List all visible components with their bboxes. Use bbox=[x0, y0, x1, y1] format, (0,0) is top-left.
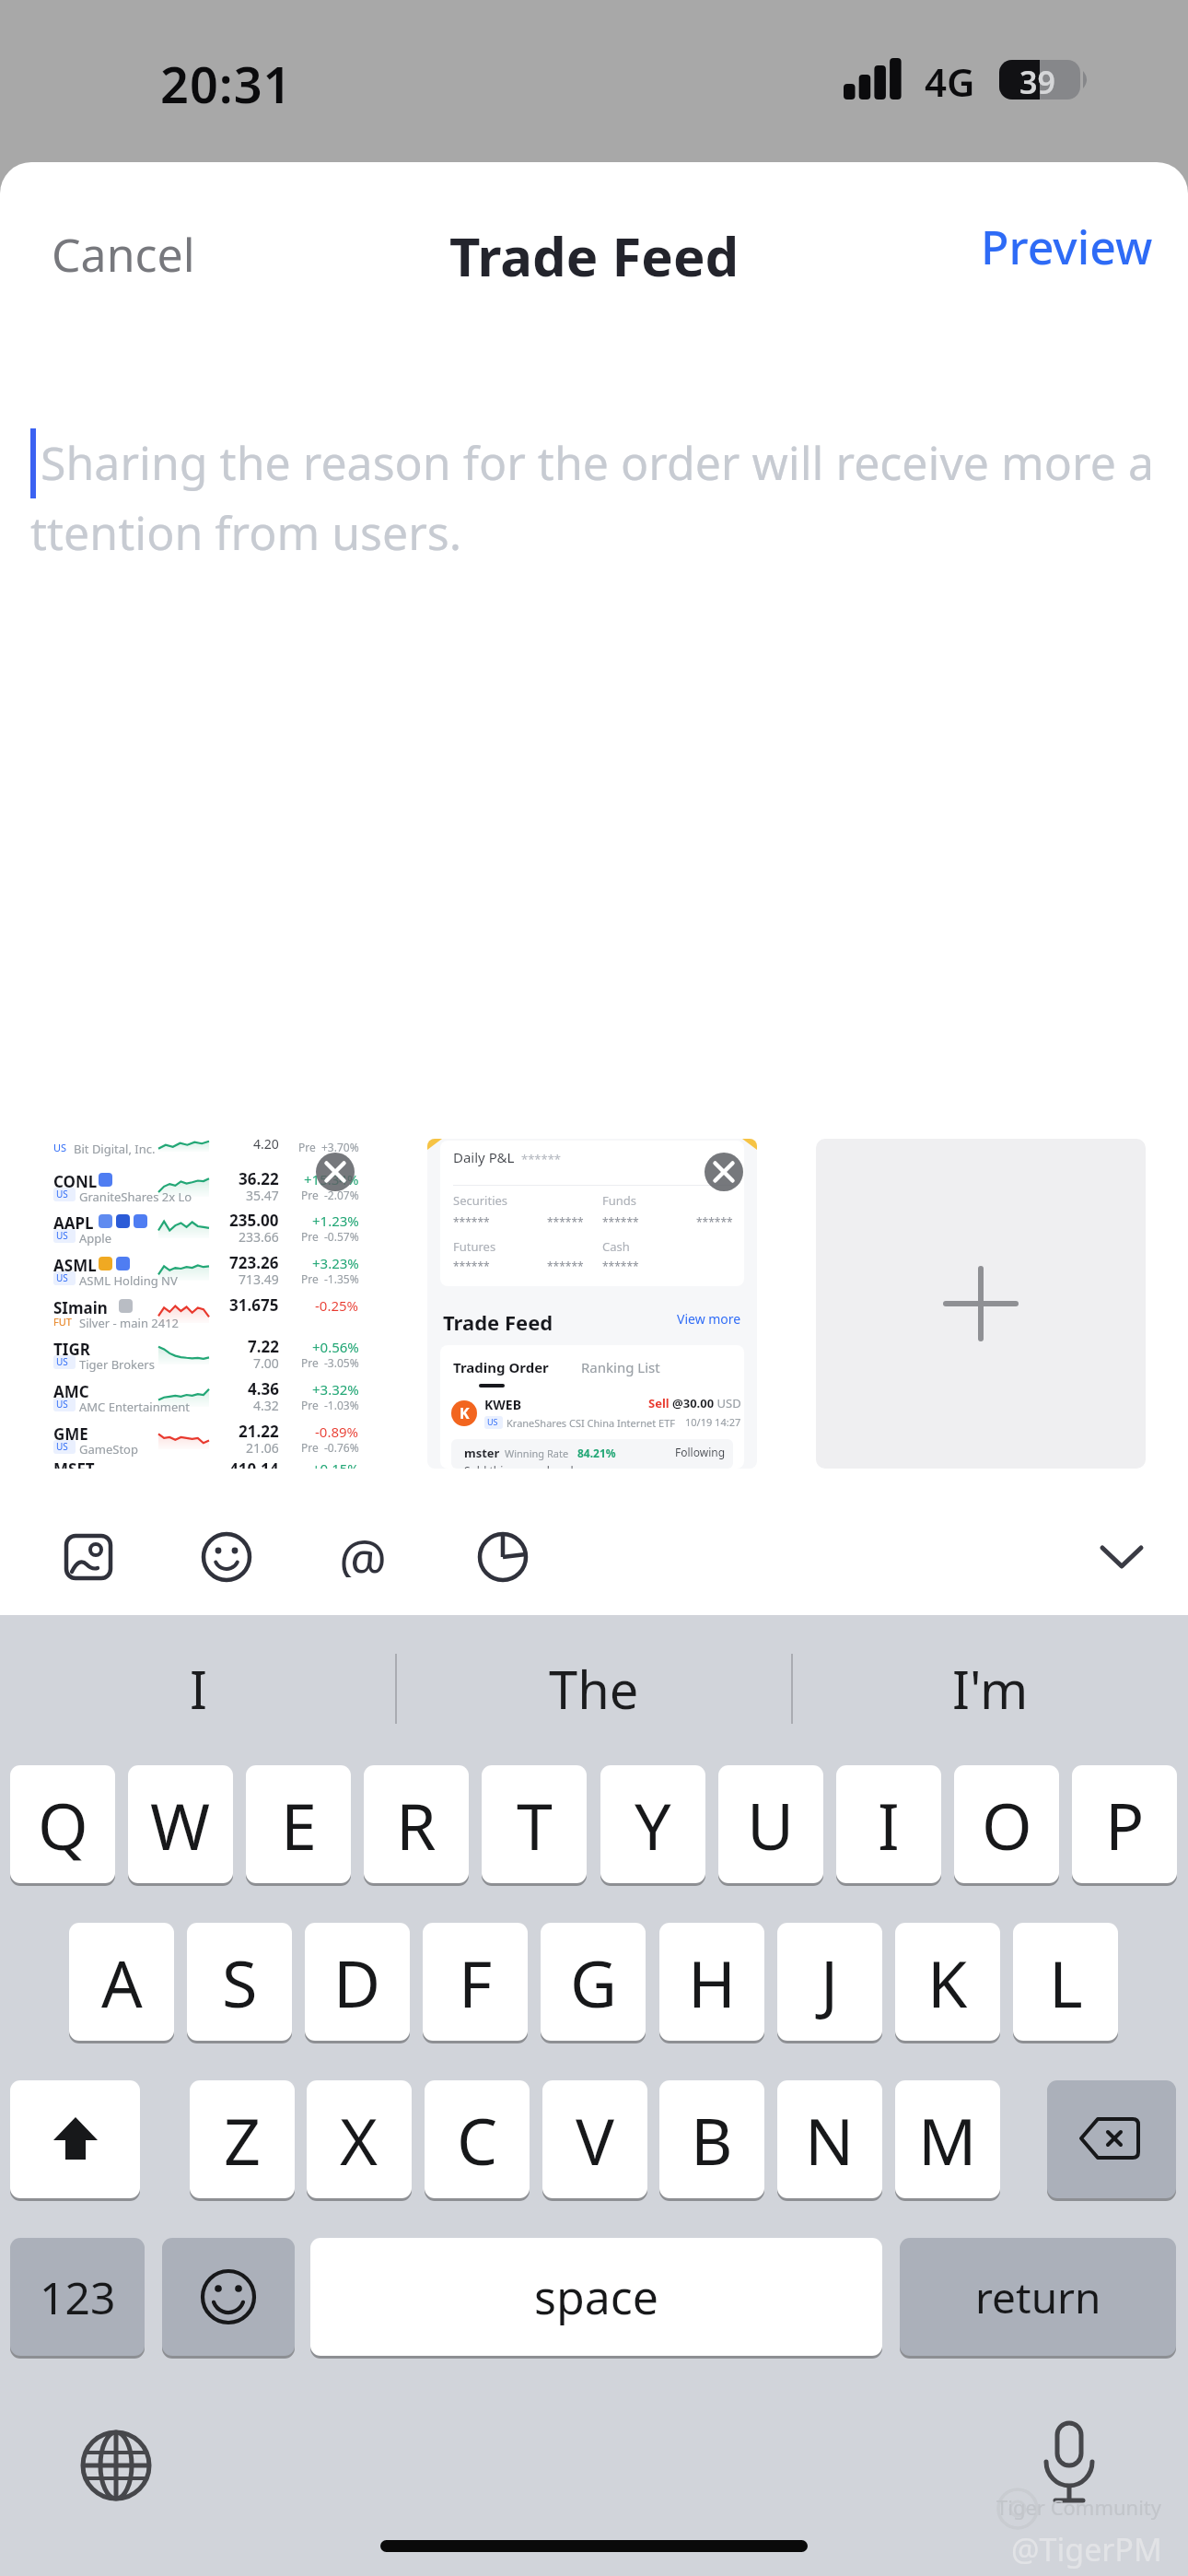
staticText: AAPL bbox=[53, 1212, 94, 1234]
staticText: FUT bbox=[53, 1315, 72, 1329]
staticText: View more bbox=[677, 1310, 741, 1328]
staticText: space bbox=[534, 2266, 658, 2328]
button[interactable]: C bbox=[425, 2080, 530, 2198]
staticText: US bbox=[487, 1416, 498, 1427]
button[interactable] bbox=[162, 2238, 295, 2356]
staticText: 36.22 bbox=[239, 1168, 279, 1189]
staticText: +3.23% bbox=[312, 1254, 359, 1272]
staticText: AMC Entertainment bbox=[79, 1399, 190, 1415]
button[interactable]: The bbox=[396, 1643, 792, 1735]
staticText: U bbox=[747, 1781, 795, 1868]
staticText: SImain bbox=[53, 1297, 108, 1318]
button[interactable]: R bbox=[364, 1765, 469, 1883]
staticText: 20:31 bbox=[160, 50, 293, 118]
staticText: 4.32 bbox=[253, 1397, 279, 1414]
button[interactable]: F bbox=[423, 1923, 528, 2041]
button[interactable]: I bbox=[0, 1643, 396, 1735]
staticText: Trade Feed bbox=[443, 1308, 553, 1336]
button[interactable]: X bbox=[307, 2080, 412, 2198]
button[interactable]: 123 bbox=[10, 2238, 145, 2356]
button[interactable]: W bbox=[128, 1765, 233, 1883]
button[interactable]: L bbox=[1013, 1923, 1118, 2041]
staticText: O bbox=[982, 1781, 1032, 1868]
staticText: ****** bbox=[602, 1214, 639, 1229]
button[interactable]: H bbox=[659, 1923, 764, 2041]
button[interactable]: G bbox=[541, 1923, 646, 2041]
staticText: M bbox=[918, 2096, 977, 2184]
staticText: K bbox=[927, 1938, 968, 2026]
button[interactable]: J bbox=[777, 1923, 882, 2041]
button[interactable]: T bbox=[482, 1765, 587, 1883]
staticText: ****** bbox=[696, 1214, 733, 1229]
staticText: Securities bbox=[453, 1192, 508, 1209]
button[interactable]: E bbox=[246, 1765, 351, 1883]
button[interactable]: O bbox=[954, 1765, 1059, 1883]
staticText: K bbox=[460, 1403, 470, 1423]
staticText: D bbox=[333, 1938, 381, 2026]
staticText: C bbox=[457, 2096, 498, 2184]
staticText: Funds bbox=[602, 1192, 637, 1209]
button[interactable]: return bbox=[900, 2238, 1176, 2356]
staticText: US bbox=[56, 1355, 68, 1368]
button[interactable]: I'm bbox=[792, 1643, 1188, 1735]
button[interactable]: B bbox=[659, 2080, 764, 2198]
button[interactable]: Daily P&L bbox=[427, 1139, 757, 1469]
button[interactable] bbox=[10, 2080, 140, 2198]
staticText: @TigerPM bbox=[1011, 2528, 1162, 2570]
staticText: 410.14 bbox=[229, 1458, 279, 1469]
staticText: GME bbox=[53, 1423, 88, 1445]
staticText: ****** bbox=[547, 1259, 584, 1273]
staticText: 84.21% bbox=[577, 1446, 616, 1460]
button[interactable] bbox=[705, 1153, 743, 1191]
button[interactable] bbox=[63, 1531, 114, 1583]
button[interactable]: Y bbox=[600, 1765, 705, 1883]
staticText: 235.00 bbox=[229, 1210, 279, 1231]
staticText: 713.49 bbox=[239, 1270, 279, 1288]
staticText: Winning Rate bbox=[505, 1446, 569, 1460]
staticText: Pre +3.70% bbox=[298, 1140, 359, 1154]
staticText: MSFT bbox=[53, 1458, 95, 1469]
button[interactable]: space bbox=[310, 2238, 882, 2356]
staticText: N bbox=[805, 2096, 855, 2184]
button[interactable] bbox=[816, 1139, 1146, 1469]
button[interactable]: P bbox=[1072, 1765, 1177, 1883]
staticText: Silver - main 2412 bbox=[79, 1315, 180, 1331]
button[interactable] bbox=[201, 1531, 252, 1583]
staticText: The bbox=[549, 1654, 639, 1724]
staticText: mster bbox=[464, 1445, 500, 1461]
staticText: ASML bbox=[53, 1255, 97, 1276]
button[interactable]: N bbox=[777, 2080, 882, 2198]
button[interactable]: A bbox=[69, 1923, 174, 2041]
button[interactable] bbox=[1098, 1537, 1149, 1577]
button[interactable]: S bbox=[187, 1923, 292, 2041]
staticText: +1.23% bbox=[312, 1212, 359, 1230]
button[interactable]: US bbox=[39, 1139, 368, 1469]
button[interactable] bbox=[1047, 2080, 1176, 2198]
staticText: B bbox=[691, 2096, 733, 2184]
staticText: US bbox=[56, 1188, 68, 1200]
button[interactable]: Q bbox=[10, 1765, 115, 1883]
staticText: Trade Feed bbox=[449, 219, 740, 292]
staticText: Q bbox=[38, 1781, 88, 1868]
button[interactable]: D bbox=[305, 1923, 410, 2041]
staticText: 7.00 bbox=[253, 1354, 279, 1372]
staticText: ****** bbox=[602, 1259, 639, 1273]
button[interactable]: M bbox=[895, 2080, 1000, 2198]
button[interactable]: Preview bbox=[923, 208, 1153, 286]
staticText: +15.34% bbox=[304, 1170, 359, 1188]
button[interactable]: K bbox=[895, 1923, 1000, 2041]
button[interactable]: Cancel bbox=[37, 212, 203, 286]
button[interactable]: Z bbox=[190, 2080, 295, 2198]
button[interactable]: I bbox=[836, 1765, 941, 1883]
button[interactable]: U bbox=[718, 1765, 823, 1883]
staticText: ASML Holding NV bbox=[79, 1272, 178, 1289]
button[interactable]: V bbox=[542, 2080, 647, 2198]
staticText: Futures bbox=[453, 1238, 496, 1255]
staticText: S bbox=[222, 1938, 258, 2026]
button[interactable] bbox=[477, 1531, 529, 1583]
button[interactable] bbox=[316, 1153, 355, 1191]
staticText: KWEB bbox=[484, 1396, 521, 1413]
staticText: 31.675 bbox=[229, 1294, 279, 1316]
button[interactable]: @ bbox=[339, 1526, 394, 1581]
staticText: ****** bbox=[453, 1259, 490, 1273]
